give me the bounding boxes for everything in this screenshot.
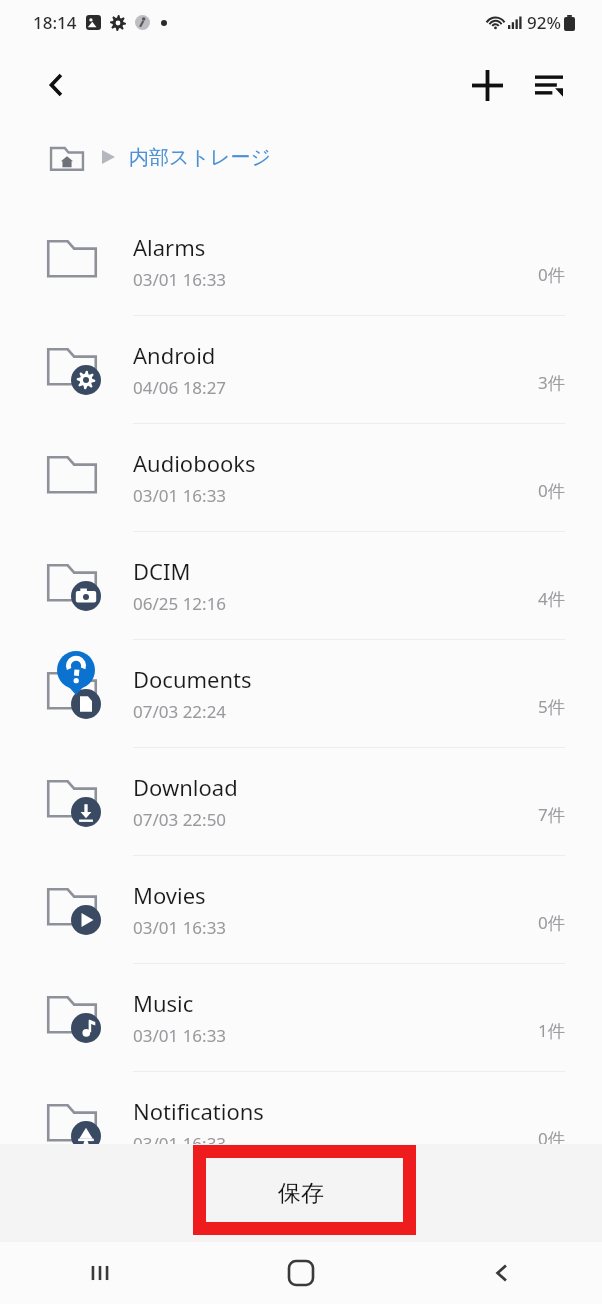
staticText: 3件 (538, 371, 565, 394)
staticText: DCIM (133, 556, 191, 586)
button[interactable]: Recents (0, 1242, 200, 1304)
staticText: Documents (133, 664, 252, 694)
staticText: Music (133, 988, 194, 1018)
button[interactable]: Home (200, 1242, 401, 1304)
staticText: 07/03 22:50 (133, 808, 227, 831)
staticText: 06/25 12:16 (133, 592, 227, 615)
staticText: 18:14 (33, 11, 77, 34)
staticText: 07/03 22:24 (133, 700, 227, 723)
staticText: 1件 (538, 1019, 565, 1042)
staticText: 92% (527, 11, 561, 34)
staticText: Alarms (133, 232, 206, 262)
staticText: 03/01 16:33 (133, 916, 227, 939)
staticText: 0件 (538, 911, 565, 934)
staticText: 03/01 16:33 (133, 1024, 227, 1047)
staticText: 内部ストレージ (129, 145, 271, 170)
button[interactable]: Download (0, 748, 602, 855)
staticText: 7件 (538, 803, 565, 826)
button[interactable]: DCIM (0, 532, 602, 639)
staticText: Download (133, 772, 238, 802)
button[interactable]: Notifications (0, 1072, 602, 1179)
staticText: 03/01 16:33 (133, 1132, 227, 1155)
button[interactable]: Alarms (0, 208, 602, 315)
staticText: 0件 (538, 1127, 565, 1150)
button[interactable]: 保存 (0, 1144, 602, 1242)
staticText: 4件 (538, 587, 565, 610)
staticText: 5件 (538, 695, 565, 718)
button[interactable]: Documents (0, 640, 602, 747)
button[interactable]: Sort (518, 54, 580, 116)
staticText: Audiobooks (133, 448, 256, 478)
staticText: Android (133, 340, 216, 370)
staticText: 04/06 18:27 (133, 376, 227, 399)
staticText: 03/01 16:33 (133, 484, 227, 507)
staticText: 0件 (538, 479, 565, 502)
button[interactable]: 内部ストレージ (0, 126, 602, 188)
button[interactable]: Back (401, 1242, 602, 1304)
staticText: Movies (133, 880, 206, 910)
button[interactable]: Add (456, 54, 518, 116)
staticText: Notifications (133, 1096, 264, 1126)
button[interactable]: Android (0, 316, 602, 423)
button[interactable]: Music (0, 964, 602, 1071)
staticText: 保存 (278, 1179, 324, 1208)
staticText: 03/01 16:33 (133, 268, 227, 291)
button[interactable]: Movies (0, 856, 602, 963)
button[interactable]: Audiobooks (0, 424, 602, 531)
staticText: 0件 (538, 263, 565, 286)
button[interactable]: Back (26, 54, 88, 116)
